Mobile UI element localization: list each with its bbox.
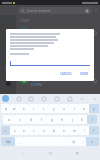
button[interactable]: Switch language <box>1 137 15 146</box>
button[interactable]: d <box>25 115 36 124</box>
button[interactable]: n <box>59 126 69 135</box>
button[interactable]: Call Contact Tp <box>91 29 98 36</box>
staticText: 5:10 PM <box>31 83 42 86</box>
button[interactable]: Tool 2 <box>40 95 47 102</box>
staticText: u <box>63 107 65 111</box>
staticText: m <box>73 129 76 133</box>
staticText: ⇧ <box>4 129 7 133</box>
button[interactable]: r <box>29 104 39 113</box>
staticText: y <box>53 107 55 111</box>
button[interactable]: Tool 1 <box>27 95 34 102</box>
staticText: r <box>33 107 35 111</box>
button[interactable]: e <box>19 104 29 113</box>
button[interactable]: s <box>14 115 25 124</box>
button[interactable]: b <box>49 126 59 135</box>
staticText: ! <box>84 129 85 133</box>
staticText: C <box>23 30 26 35</box>
button[interactable]: f <box>36 115 47 124</box>
staticText: s <box>19 118 21 122</box>
staticText: D <box>23 78 26 83</box>
staticText: CANCEL <box>60 72 73 76</box>
staticText: o <box>83 107 85 111</box>
button[interactable]: o <box>79 104 89 113</box>
button[interactable]: C <box>20 26 100 38</box>
staticText: g <box>51 118 53 122</box>
button[interactable]: CANCEL <box>59 71 74 77</box>
button[interactable]: Groups <box>4 95 12 103</box>
staticText: t <box>43 107 45 111</box>
button[interactable]: Home <box>46 149 55 158</box>
button[interactable]: Expand <box>91 95 98 102</box>
button[interactable]: Back <box>18 149 27 158</box>
button[interactable]: Call Dr Henry Kidd <box>91 77 98 84</box>
staticText: ↵ <box>91 140 94 144</box>
button[interactable]: ? <box>89 126 99 135</box>
staticText: TODAY <box>20 19 30 23</box>
button[interactable]: , <box>15 137 23 146</box>
button[interactable]: z <box>10 126 19 135</box>
button[interactable]: Tool 3 <box>53 95 60 102</box>
button[interactable]: v <box>39 126 49 135</box>
button[interactable]: u <box>59 104 69 113</box>
button[interactable]: Emoji <box>69 137 78 146</box>
button[interactable]: y <box>49 104 59 113</box>
button[interactable]: l <box>87 115 97 124</box>
button[interactable]: g <box>47 115 57 124</box>
staticText: i <box>74 107 75 111</box>
staticText: , <box>19 140 20 144</box>
staticText: n <box>63 129 65 133</box>
button[interactable]: j <box>67 115 77 124</box>
button[interactable] <box>10 61 90 66</box>
staticText: p <box>93 107 95 111</box>
button[interactable]: h <box>57 115 67 124</box>
staticText: Search contacts <box>27 9 51 13</box>
button[interactable]: q <box>1 104 10 113</box>
staticText: l <box>92 118 93 122</box>
button[interactable]: p <box>89 104 99 113</box>
button[interactable]: w <box>10 104 19 113</box>
button[interactable]: SEND <box>79 71 90 77</box>
button[interactable]: Contacts <box>4 79 12 87</box>
staticText: . <box>82 140 83 144</box>
button[interactable]: Enter <box>86 137 99 146</box>
staticText: j <box>72 118 73 122</box>
button[interactable]: ⇧ <box>1 126 10 135</box>
staticText: ☺ <box>72 140 76 144</box>
staticText: d <box>30 118 32 122</box>
staticText: Contact Tp <box>31 30 48 35</box>
button[interactable]: t <box>39 104 49 113</box>
button[interactable]: Google <box>2 95 9 102</box>
staticText: q <box>5 107 7 111</box>
button[interactable]: Search contacts <box>18 7 92 14</box>
button[interactable]: More <box>78 95 85 102</box>
staticText: k <box>81 118 83 122</box>
button[interactable]: k <box>77 115 87 124</box>
staticText: v <box>43 129 45 133</box>
other: Account <box>85 9 89 13</box>
staticText: SEND <box>80 72 89 76</box>
button[interactable]: Tool 4 <box>66 95 73 102</box>
staticText: ⌨ <box>6 140 11 144</box>
button[interactable]: D <box>20 74 100 86</box>
staticText: c <box>33 129 35 133</box>
button[interactable]: c <box>29 126 39 135</box>
staticText: x <box>23 129 25 133</box>
button[interactable]: x <box>19 126 29 135</box>
button[interactable]: Tool 0 <box>15 95 22 102</box>
button[interactable]: ! <box>79 126 89 135</box>
button[interactable]: i <box>69 104 79 113</box>
staticText: w <box>13 107 16 111</box>
button[interactable]: Favourites <box>4 63 12 71</box>
staticText: a <box>8 118 10 122</box>
staticText: Mobile • 5m <box>31 79 47 83</box>
button[interactable]: m <box>69 126 79 135</box>
staticText: e <box>23 107 25 111</box>
staticText: z <box>14 129 16 133</box>
button[interactable]: Recents <box>73 149 82 158</box>
button[interactable]: a <box>3 115 14 124</box>
